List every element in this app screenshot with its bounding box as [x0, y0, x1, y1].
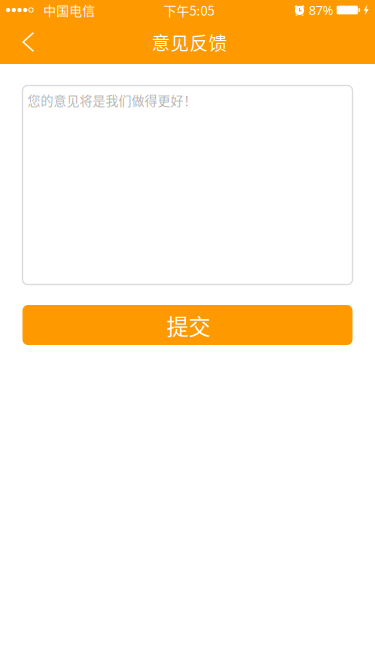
staticText: 您的意见将是我们做得更好！ — [27, 90, 196, 109]
staticText: 中国电信 — [43, 1, 95, 19]
staticText: 意见反馈 — [151, 29, 227, 55]
staticText: 下午5:05 — [163, 1, 214, 19]
staticText: 提交 — [166, 309, 210, 341]
button[interactable]: Back — [0, 20, 46, 64]
staticText: 87% — [309, 1, 334, 19]
button[interactable]: 提交 — [22, 305, 352, 345]
